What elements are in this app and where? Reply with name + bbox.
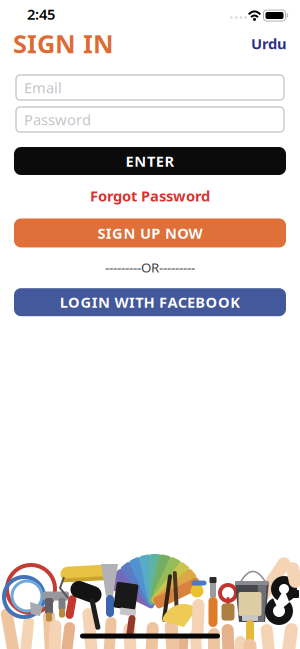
staticText: Password	[24, 110, 91, 129]
button[interactable]: SIGN UP NOW	[14, 218, 286, 247]
staticText: ENTER	[125, 151, 175, 171]
button[interactable]: ENTER	[14, 147, 286, 175]
staticText: 2:45	[27, 4, 55, 24]
staticText: ---------OR---------	[105, 258, 195, 276]
staticText: SIGN UP NOW	[97, 223, 202, 243]
staticText: LOGIN WITH FACEBOOK	[60, 292, 240, 312]
button[interactable]: Forgot Password	[90, 186, 210, 205]
staticText: Urdu	[251, 34, 287, 53]
staticText: SIGN IN	[13, 27, 114, 60]
button[interactable]: Urdu	[251, 34, 287, 53]
staticText: Forgot Password	[90, 186, 210, 205]
button[interactable]: LOGIN WITH FACEBOOK	[14, 288, 286, 316]
staticText: Email	[24, 78, 62, 97]
